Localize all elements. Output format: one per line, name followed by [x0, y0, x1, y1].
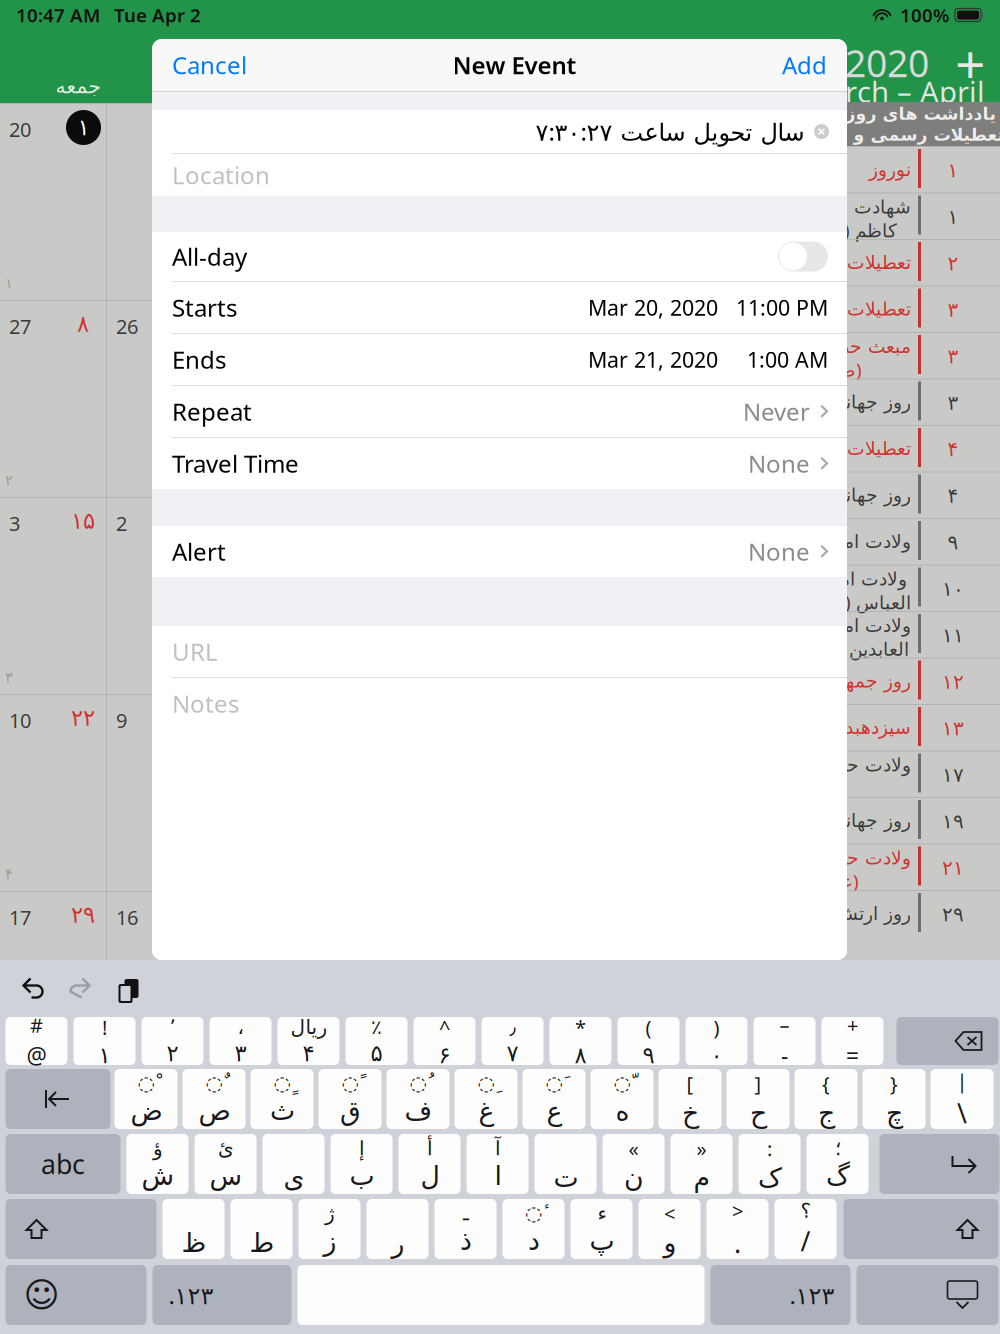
button[interactable]: Redo: [68, 976, 92, 1000]
button[interactable]: »: [670, 1134, 732, 1194]
staticText: ولادت حض (عج): [824, 847, 911, 893]
button[interactable]: #: [5, 1017, 67, 1065]
button[interactable]: Paste: [114, 976, 136, 1000]
button[interactable]: Numbers: [710, 1265, 850, 1325]
button[interactable]: Add: [762, 39, 847, 91]
button[interactable]: Tab: [5, 1069, 110, 1129]
staticText: -: [781, 1040, 788, 1070]
button[interactable]: ٪: [345, 1017, 407, 1065]
button[interactable]: ٬: [141, 1017, 203, 1065]
button[interactable]: [230, 1199, 292, 1259]
button[interactable]: ٫: [481, 1017, 543, 1065]
staticText: ۱۷: [942, 763, 964, 786]
button[interactable]: <: [638, 1199, 700, 1259]
button[interactable]: ء: [570, 1199, 632, 1259]
staticText: ح: [749, 1098, 766, 1128]
button[interactable]: >: [706, 1199, 768, 1259]
staticText: ً: [341, 1072, 358, 1095]
staticText: Starts: [172, 292, 237, 323]
staticText: 3: [9, 510, 20, 537]
button[interactable]: +: [821, 1017, 883, 1065]
button[interactable]: !: [73, 1017, 135, 1065]
button[interactable]: Undo: [22, 976, 46, 1000]
staticText: abc: [41, 1146, 85, 1182]
button[interactable]: ژ: [298, 1199, 360, 1259]
button[interactable]: Ends: [152, 334, 847, 385]
staticText: ۳: [5, 669, 13, 686]
staticText: !: [102, 1014, 107, 1040]
staticText: Travel Time: [172, 448, 299, 479]
staticText: ۵: [5, 1063, 13, 1080]
button[interactable]: |: [930, 1069, 993, 1129]
button[interactable]: :: [738, 1134, 800, 1194]
staticText: روز جهانی: [830, 484, 911, 506]
staticText: ☺: [23, 1275, 59, 1315]
button[interactable]: ئ: [194, 1134, 256, 1194]
staticText: *: [575, 1014, 586, 1040]
button[interactable]: *: [549, 1017, 611, 1065]
staticText: غ: [478, 1096, 494, 1126]
button[interactable]: ،: [209, 1017, 271, 1065]
button[interactable]: ٍ: [250, 1069, 313, 1129]
staticText: ۳: [947, 298, 958, 321]
staticText: [: [686, 1070, 693, 1097]
button[interactable]: –: [753, 1017, 815, 1065]
staticText: {: [822, 1070, 830, 1097]
button[interactable]: {: [794, 1069, 857, 1129]
button[interactable]: ]: [726, 1069, 789, 1129]
button[interactable]: Letters: [5, 1134, 120, 1194]
staticText: تعطیلات ن: [827, 298, 911, 320]
staticText: ض: [130, 1096, 162, 1126]
button[interactable]: Numbers: [152, 1265, 291, 1325]
button[interactable]: All-day toggle: [152, 232, 847, 281]
button[interactable]: Alert: [152, 526, 847, 577]
button[interactable]: Starts: [152, 282, 847, 333]
button[interactable]: آ: [466, 1134, 528, 1194]
staticText: ۲: [947, 252, 958, 275]
button[interactable]: ٌ: [182, 1069, 245, 1129]
staticText: «: [628, 1135, 638, 1162]
button[interactable]: [366, 1199, 428, 1259]
staticText: ٔ: [525, 1202, 542, 1225]
button[interactable]: Travel Time: [152, 438, 847, 489]
staticText: روز جهانی: [830, 391, 911, 413]
button[interactable]: أ: [398, 1134, 460, 1194]
button[interactable]: ؤ: [126, 1134, 188, 1194]
button[interactable]: ؟: [774, 1199, 836, 1259]
button[interactable]: ً: [318, 1069, 381, 1129]
button[interactable]: [262, 1134, 324, 1194]
staticText: ه: [615, 1096, 629, 1126]
button[interactable]: Return: [879, 1134, 999, 1194]
button[interactable]: [534, 1134, 596, 1194]
button[interactable]: Emoji: [5, 1265, 146, 1325]
button[interactable]: ـ: [434, 1199, 496, 1259]
button[interactable]: [: [658, 1069, 721, 1129]
button[interactable]: Shift: [5, 1199, 156, 1259]
staticText: }: [890, 1070, 898, 1097]
button[interactable]: ): [685, 1017, 747, 1065]
button[interactable]: (: [617, 1017, 679, 1065]
button[interactable]: ّ: [590, 1069, 653, 1129]
button[interactable]: ؛: [806, 1134, 868, 1194]
button[interactable]: ^: [413, 1017, 475, 1065]
button[interactable]: «: [602, 1134, 664, 1194]
staticText: ِ: [477, 1072, 494, 1095]
button[interactable]: Clear text: [814, 124, 829, 139]
button[interactable]: ٔ: [502, 1199, 564, 1259]
button[interactable]: ِ: [454, 1069, 517, 1129]
button[interactable]: [162, 1199, 224, 1259]
button[interactable]: Shift: [843, 1199, 998, 1259]
button[interactable]: Delete: [896, 1017, 998, 1065]
button[interactable]: Repeat: [152, 386, 847, 437]
button[interactable]: ْ: [114, 1069, 177, 1129]
button[interactable]: َ: [522, 1069, 585, 1129]
button[interactable]: ُ: [386, 1069, 449, 1129]
button[interactable]: }: [862, 1069, 925, 1129]
button[interactable]: Hide keyboard: [856, 1265, 998, 1325]
button[interactable]: ریال: [277, 1017, 339, 1065]
staticText: ٪: [371, 1016, 382, 1038]
staticText: ۸: [574, 1042, 586, 1068]
button[interactable]: إ: [330, 1134, 392, 1194]
button[interactable]: Cancel: [152, 39, 267, 91]
